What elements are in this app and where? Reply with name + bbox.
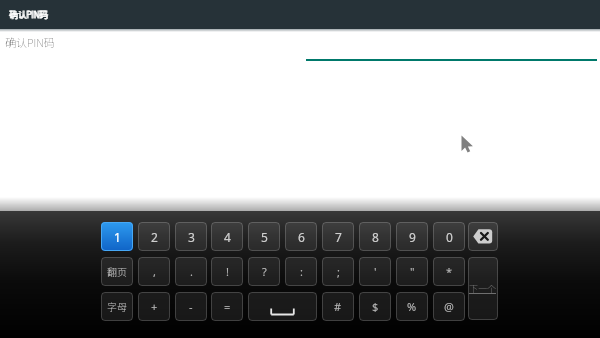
staticText: + <box>151 299 158 314</box>
staticText: 8 <box>372 229 379 245</box>
staticText: : <box>300 264 303 279</box>
staticText: ; <box>337 264 340 279</box>
staticText: " <box>410 264 415 279</box>
staticText: 下一个 <box>469 283 497 294</box>
staticText: = <box>224 299 231 314</box>
staticText: 4 <box>224 229 231 245</box>
staticText: 1 <box>114 229 121 245</box>
staticText: $ <box>372 299 379 314</box>
staticText: % <box>407 299 417 314</box>
staticText: 确认PIN码 <box>5 36 55 49</box>
staticText: 5 <box>261 229 268 245</box>
staticText: 0 <box>446 229 453 245</box>
staticText: 翻页 <box>107 266 127 278</box>
staticText: 6 <box>298 229 305 245</box>
staticText: - <box>189 299 193 314</box>
staticText: ! <box>226 264 229 279</box>
staticText: 字母 <box>107 301 127 313</box>
staticText: . <box>190 264 193 279</box>
staticText: ' <box>374 264 377 279</box>
staticText: 9 <box>409 229 416 245</box>
staticText: 3 <box>188 229 195 245</box>
staticText: 7 <box>335 229 342 245</box>
staticText: 2 <box>151 229 158 245</box>
staticText: # <box>334 299 342 314</box>
staticText: @ <box>444 299 454 314</box>
staticText: ? <box>262 264 267 279</box>
staticText: , <box>153 264 156 279</box>
staticText: 确认PIN码 <box>9 10 48 20</box>
staticText: * <box>446 264 453 279</box>
staticText: 确认PIN码 <box>10 10 49 20</box>
